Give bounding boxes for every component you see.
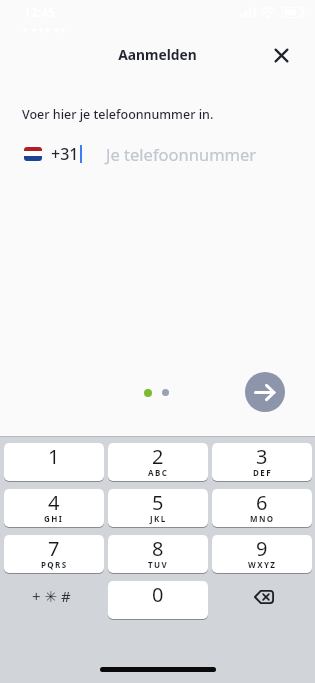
staticText: JKL — [150, 513, 167, 524]
button[interactable]: +31 — [24, 141, 257, 167]
button[interactable] — [212, 581, 312, 619]
staticText: MNO — [250, 513, 275, 524]
button[interactable]: 8 — [108, 535, 208, 573]
staticText: ABC — [148, 467, 169, 478]
staticText: 3 — [256, 443, 268, 470]
staticText: PQRS — [41, 559, 68, 570]
button[interactable]: + ✳ # — [4, 581, 104, 619]
staticText: + ✳ # — [32, 586, 71, 606]
button[interactable]: 6 — [212, 489, 312, 527]
button[interactable]: 1 — [4, 443, 104, 481]
button[interactable]: 5 — [108, 489, 208, 527]
staticText: 4 — [48, 489, 60, 516]
staticText: Aanmelden — [0, 45, 315, 64]
button[interactable] — [245, 372, 285, 412]
staticText: DEF — [253, 467, 272, 478]
staticText: 9 — [256, 535, 268, 562]
staticText: 7 — [48, 535, 60, 562]
staticText: WXYZ — [248, 559, 277, 570]
staticText: +31 — [51, 143, 79, 165]
staticText: 2 — [152, 443, 164, 470]
staticText: 0 — [152, 581, 164, 608]
staticText: 6 — [256, 489, 268, 516]
button[interactable]: 0 — [108, 581, 208, 619]
staticText: 8 — [152, 535, 164, 562]
staticText: GHI — [44, 513, 64, 524]
staticText: TUV — [148, 559, 169, 570]
button[interactable]: 9 — [212, 535, 312, 573]
staticText: 1 — [48, 443, 60, 470]
staticText: Voer hier je telefoonnummer in. — [22, 106, 214, 123]
button[interactable]: 7 — [4, 535, 104, 573]
button[interactable]: 2 — [108, 443, 208, 481]
staticText: 5 — [152, 489, 164, 516]
button[interactable] — [268, 42, 294, 68]
staticText: Je telefoonnummer — [106, 143, 257, 165]
button[interactable]: 3 — [212, 443, 312, 481]
button[interactable]: 4 — [4, 489, 104, 527]
